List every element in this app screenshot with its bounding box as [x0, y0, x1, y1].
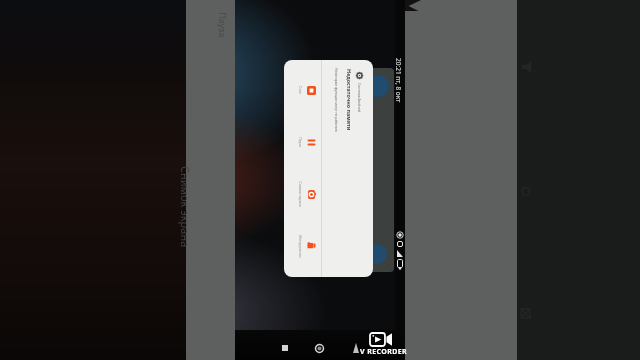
button[interactable]: Снимок экрана: [284, 168, 321, 220]
staticText: Пауза: [217, 12, 229, 38]
button[interactable]: Home: [315, 344, 324, 353]
staticText: 20:21 пт, 8 окт: [394, 58, 403, 103]
staticText: Снимок экрана: [178, 166, 193, 248]
staticText: Стоп: [298, 86, 303, 94]
button[interactable]: Стоп: [284, 64, 321, 116]
staticText: Недостаточно памяти: [346, 69, 353, 131]
staticText: Инструменты: [298, 235, 303, 258]
staticText: Пауза: [298, 137, 303, 147]
staticText: Некоторые функции могут не работать: [334, 68, 339, 133]
button[interactable]: Инструменты: [284, 220, 321, 272]
staticText: Снимок экрана: [298, 181, 303, 207]
other: Watermark: [353, 343, 359, 353]
staticText: Система Android: [357, 83, 362, 113]
staticText: V RECORDER: [360, 347, 408, 357]
button[interactable]: Пауза: [284, 116, 321, 168]
